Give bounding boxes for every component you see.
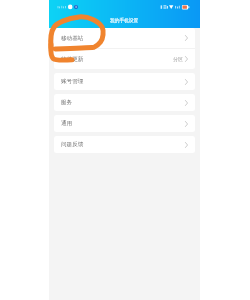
staticText: 分区 [173, 56, 183, 62]
button[interactable]: 账号管理 [54, 73, 195, 90]
staticText: 问题反馈 [61, 141, 84, 148]
button[interactable]: 服务 [54, 94, 195, 111]
other: Annotation [0, 0, 250, 300]
button[interactable]: 软件更新 [54, 49, 195, 69]
button[interactable]: 移动基站 [54, 28, 195, 48]
staticText: 移动基站 [61, 35, 84, 42]
button[interactable]: 问题反馈 [54, 136, 195, 153]
staticText: 服务 [61, 99, 73, 106]
staticText: 账号管理 [61, 78, 84, 85]
button[interactable]: 通用 [54, 115, 195, 132]
staticText: 软件更新 [61, 56, 84, 63]
staticText: 通用 [61, 120, 73, 127]
staticText: 我的手机设置 [110, 17, 139, 23]
